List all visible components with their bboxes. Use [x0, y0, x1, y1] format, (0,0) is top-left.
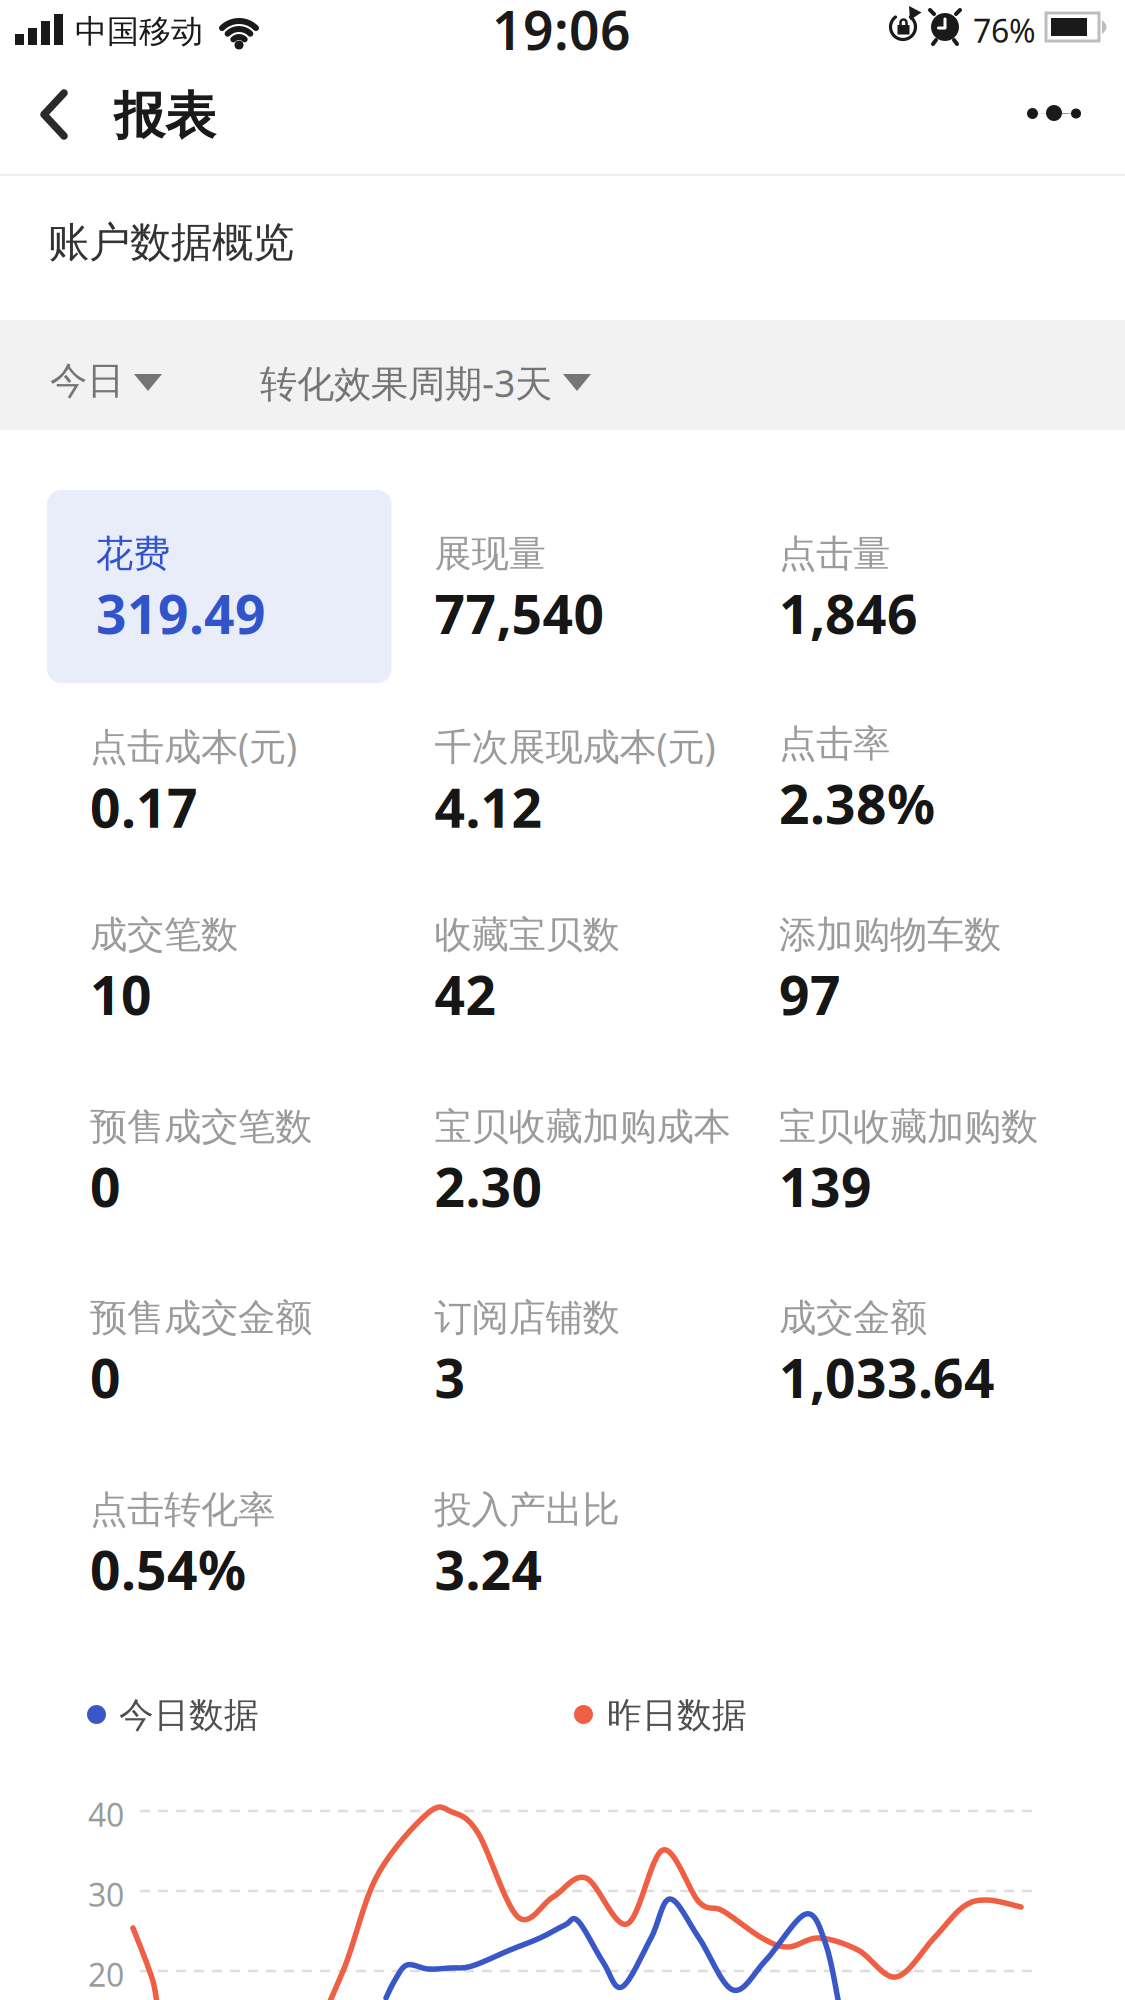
staticText: 1,846	[779, 578, 918, 649]
staticText: 订阅店铺数	[434, 1295, 619, 1341]
staticText: 2.38%	[779, 768, 935, 839]
staticText: 319.49	[96, 578, 266, 649]
staticText: 展现量	[434, 531, 545, 577]
staticText: 账户数据概览	[48, 217, 294, 268]
button[interactable]: 成交笔数	[90, 912, 238, 1030]
staticText: 点击量	[779, 531, 890, 577]
staticText: 昨日数据	[607, 1694, 747, 1737]
button[interactable]: 投入产出比	[434, 1487, 619, 1605]
staticText: 点击成本(元)	[90, 721, 297, 771]
button[interactable]: 添加购物车数	[779, 912, 1001, 1030]
staticText: 1,033.64	[779, 1342, 995, 1413]
staticText: 20	[88, 1953, 124, 1995]
staticText: 添加购物车数	[779, 912, 1001, 958]
staticText: 中国移动	[75, 12, 203, 51]
button[interactable]: 今日	[0, 0, 1125, 430]
staticText: 今日	[50, 358, 124, 404]
staticText: 42	[434, 959, 496, 1030]
staticText: 0	[90, 1342, 121, 1413]
staticText: 成交金额	[779, 1295, 927, 1341]
button[interactable]: 点击量	[779, 531, 918, 649]
button[interactable]: 花费	[47, 490, 391, 683]
staticText: 点击转化率	[90, 1487, 275, 1533]
staticText: 收藏宝贝数	[434, 912, 619, 958]
staticText: 投入产出比	[434, 1487, 619, 1533]
button[interactable]: 点击成本(元)	[90, 721, 297, 842]
staticText: 点击率	[779, 721, 890, 767]
button[interactable]: 收藏宝贝数	[434, 912, 619, 1030]
button[interactable]: 展现量	[434, 531, 604, 649]
staticText: 0.17	[90, 772, 198, 842]
staticText: 预售成交金额	[90, 1295, 312, 1341]
staticText: 40	[88, 1793, 124, 1835]
button[interactable]: 预售成交笔数	[90, 1104, 312, 1222]
button[interactable]: 千次展现成本(元)	[434, 721, 715, 842]
staticText: 今日数据	[119, 1694, 259, 1737]
staticText: 30	[88, 1873, 124, 1915]
staticText: 10	[90, 959, 152, 1030]
button[interactable]: 点击转化率	[90, 1487, 275, 1605]
button[interactable]: 成交金额	[779, 1295, 995, 1413]
staticText: 4.12	[434, 772, 542, 842]
staticText: 0.54%	[90, 1534, 246, 1605]
staticText: 转化效果周期-3天	[260, 358, 552, 408]
staticText: 成交笔数	[90, 912, 238, 958]
button[interactable]: 更多	[0, 0, 1125, 170]
staticText: 千次展现成本(元)	[434, 721, 715, 771]
staticText: 宝贝收藏加购成本	[434, 1104, 730, 1150]
staticText: 预售成交笔数	[90, 1104, 312, 1150]
staticText: 3	[434, 1342, 465, 1413]
staticText: 花费	[96, 531, 170, 577]
staticText: 2.30	[434, 1151, 542, 1222]
button[interactable]: 返回	[0, 0, 100, 170]
staticText: 报表	[114, 85, 216, 147]
staticText: 97	[779, 959, 841, 1030]
button[interactable]: 转化效果周期-3天	[0, 0, 1125, 430]
button[interactable]: 宝贝收藏加购数	[779, 1104, 1038, 1222]
staticText: 76%	[973, 9, 1036, 51]
staticText: 19:06	[492, 0, 631, 65]
button[interactable]: 宝贝收藏加购成本	[434, 1104, 730, 1222]
button[interactable]: 预售成交金额	[90, 1295, 312, 1413]
button[interactable]: 点击率	[779, 721, 935, 839]
staticText: 3.24	[434, 1534, 542, 1605]
staticText: 0	[90, 1151, 121, 1222]
button[interactable]: 订阅店铺数	[434, 1295, 619, 1413]
staticText: 宝贝收藏加购数	[779, 1104, 1038, 1150]
staticText: 139	[779, 1151, 872, 1222]
staticText: 77,540	[434, 578, 604, 649]
